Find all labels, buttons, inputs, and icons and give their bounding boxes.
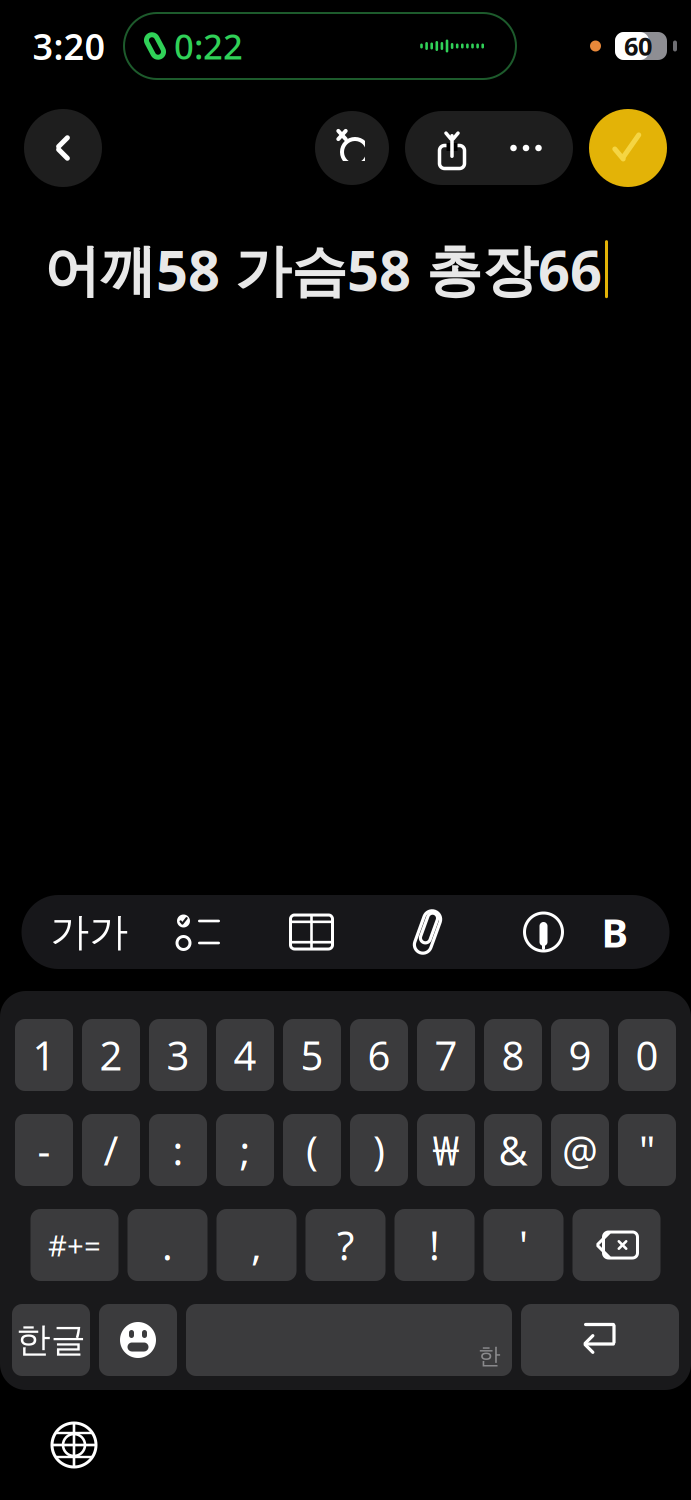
button[interactable]: @: [551, 1114, 609, 1186]
staticText: /: [103, 1123, 118, 1176]
button[interactable]: Markup: [485, 895, 601, 969]
button[interactable]: #+=: [30, 1209, 118, 1281]
button[interactable]: ?: [305, 1209, 385, 1281]
staticText: .: [162, 1218, 173, 1271]
button[interactable]: Checklist: [143, 895, 253, 969]
button[interactable]: 가가: [35, 895, 143, 969]
staticText: (: [306, 1123, 318, 1176]
button[interactable]: Delete: [572, 1209, 660, 1281]
staticText: B: [601, 905, 628, 958]
button[interactable]: ': [483, 1209, 563, 1281]
button[interactable]: :: [149, 1114, 207, 1186]
staticText: 7: [434, 1028, 457, 1081]
staticText: 한글: [16, 1319, 86, 1361]
staticText: 5: [300, 1028, 323, 1081]
button[interactable]: 4: [216, 1019, 274, 1091]
staticText: 가가: [50, 908, 128, 956]
button[interactable]: &: [484, 1114, 542, 1186]
staticText: ': [519, 1218, 528, 1271]
button[interactable]: Space: [186, 1304, 512, 1376]
staticText: !: [429, 1218, 440, 1271]
button[interactable]: 9: [551, 1019, 609, 1091]
staticText: ;: [239, 1123, 250, 1176]
button[interactable]: ₩: [417, 1114, 475, 1186]
button[interactable]: Attach file: [369, 895, 485, 969]
staticText: #+=: [48, 1225, 101, 1264]
staticText: 6: [367, 1028, 390, 1081]
staticText: 8: [501, 1028, 524, 1081]
button[interactable]: 1: [15, 1019, 73, 1091]
staticText: ": [639, 1123, 655, 1176]
button[interactable]: 6: [350, 1019, 408, 1091]
button[interactable]: 0: [618, 1019, 676, 1091]
staticText: &: [498, 1123, 527, 1176]
staticText: 60: [624, 29, 652, 63]
staticText: 2: [99, 1028, 122, 1081]
staticText: 4: [233, 1028, 256, 1081]
staticText: 한: [478, 1342, 501, 1370]
button[interactable]: ): [350, 1114, 408, 1186]
button[interactable]: Back: [24, 109, 102, 187]
staticText: ?: [337, 1218, 354, 1271]
button[interactable]: (: [283, 1114, 341, 1186]
button[interactable]: Table: [253, 895, 369, 969]
button[interactable]: !: [394, 1209, 474, 1281]
button[interactable]: Change keyboard language: [26, 1397, 122, 1493]
button[interactable]: ;: [216, 1114, 274, 1186]
button[interactable]: Done: [589, 109, 667, 187]
button[interactable]: 7: [417, 1019, 475, 1091]
staticText: -: [37, 1123, 50, 1176]
button[interactable]: Share: [415, 111, 489, 185]
button[interactable]: More options: [489, 111, 563, 185]
staticText: 9: [568, 1028, 591, 1081]
staticText: 0: [635, 1028, 658, 1081]
button[interactable]: More formatting: [601, 895, 655, 969]
button[interactable]: .: [127, 1209, 207, 1281]
button[interactable]: Return: [521, 1304, 679, 1376]
button[interactable]: Emoji: [99, 1304, 177, 1376]
button[interactable]: 8: [484, 1019, 542, 1091]
staticText: 3:20: [32, 22, 105, 70]
staticText: ,: [251, 1218, 262, 1271]
button[interactable]: /: [82, 1114, 140, 1186]
staticText: :: [172, 1123, 183, 1176]
button[interactable]: 3: [149, 1019, 207, 1091]
button[interactable]: 5: [283, 1019, 341, 1091]
staticText: @: [562, 1123, 598, 1176]
button[interactable]: -: [15, 1114, 73, 1186]
staticText: 어깨58 가슴58 총장66: [44, 232, 602, 306]
button[interactable]: ": [618, 1114, 676, 1186]
staticText: 0:22: [174, 23, 243, 69]
button[interactable]: 한글: [12, 1304, 90, 1376]
staticText: 1: [32, 1028, 55, 1081]
button[interactable]: ,: [216, 1209, 296, 1281]
staticText: 3: [166, 1028, 189, 1081]
staticText: ): [373, 1123, 385, 1176]
button[interactable]: Undo: [315, 111, 389, 185]
button[interactable]: 2: [82, 1019, 140, 1091]
staticText: ₩: [432, 1123, 459, 1176]
